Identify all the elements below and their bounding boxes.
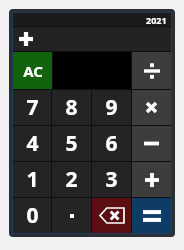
button[interactable]: 4 — [13, 126, 51, 161]
button[interactable]: Add — [13, 27, 171, 51]
button[interactable]: AC — [13, 52, 52, 89]
button[interactable]: 7 — [13, 90, 51, 125]
staticText: 0 — [26, 201, 39, 230]
button[interactable]: Add — [132, 162, 171, 197]
button[interactable]: Multiply — [132, 90, 171, 125]
staticText: 1 — [26, 165, 39, 194]
staticText: 2 — [65, 165, 78, 194]
staticText: 2021 — [146, 14, 167, 26]
staticText: 7 — [26, 93, 39, 122]
staticText: 8 — [65, 93, 78, 122]
button[interactable]: 8 — [52, 90, 91, 125]
button[interactable]: 5 — [52, 126, 91, 161]
button[interactable]: 6 — [92, 126, 131, 161]
button[interactable] — [52, 198, 91, 233]
button[interactable]: Backspace — [92, 198, 131, 233]
button[interactable]: 1 — [13, 162, 51, 197]
button[interactable]: 9 — [92, 90, 131, 125]
button[interactable]: 3 — [92, 162, 131, 197]
button[interactable]: 2 — [52, 162, 91, 197]
button[interactable]: Equals — [132, 198, 171, 233]
button[interactable]: 0 — [13, 198, 51, 233]
button[interactable]: Subtract — [132, 126, 171, 161]
staticText: 6 — [105, 129, 118, 158]
staticText: 9 — [105, 93, 118, 122]
staticText: 4 — [26, 129, 39, 158]
button[interactable]: Divide — [132, 52, 171, 89]
staticText: AC — [23, 61, 43, 81]
staticText: 5 — [65, 129, 78, 158]
staticText: 3 — [105, 165, 118, 194]
